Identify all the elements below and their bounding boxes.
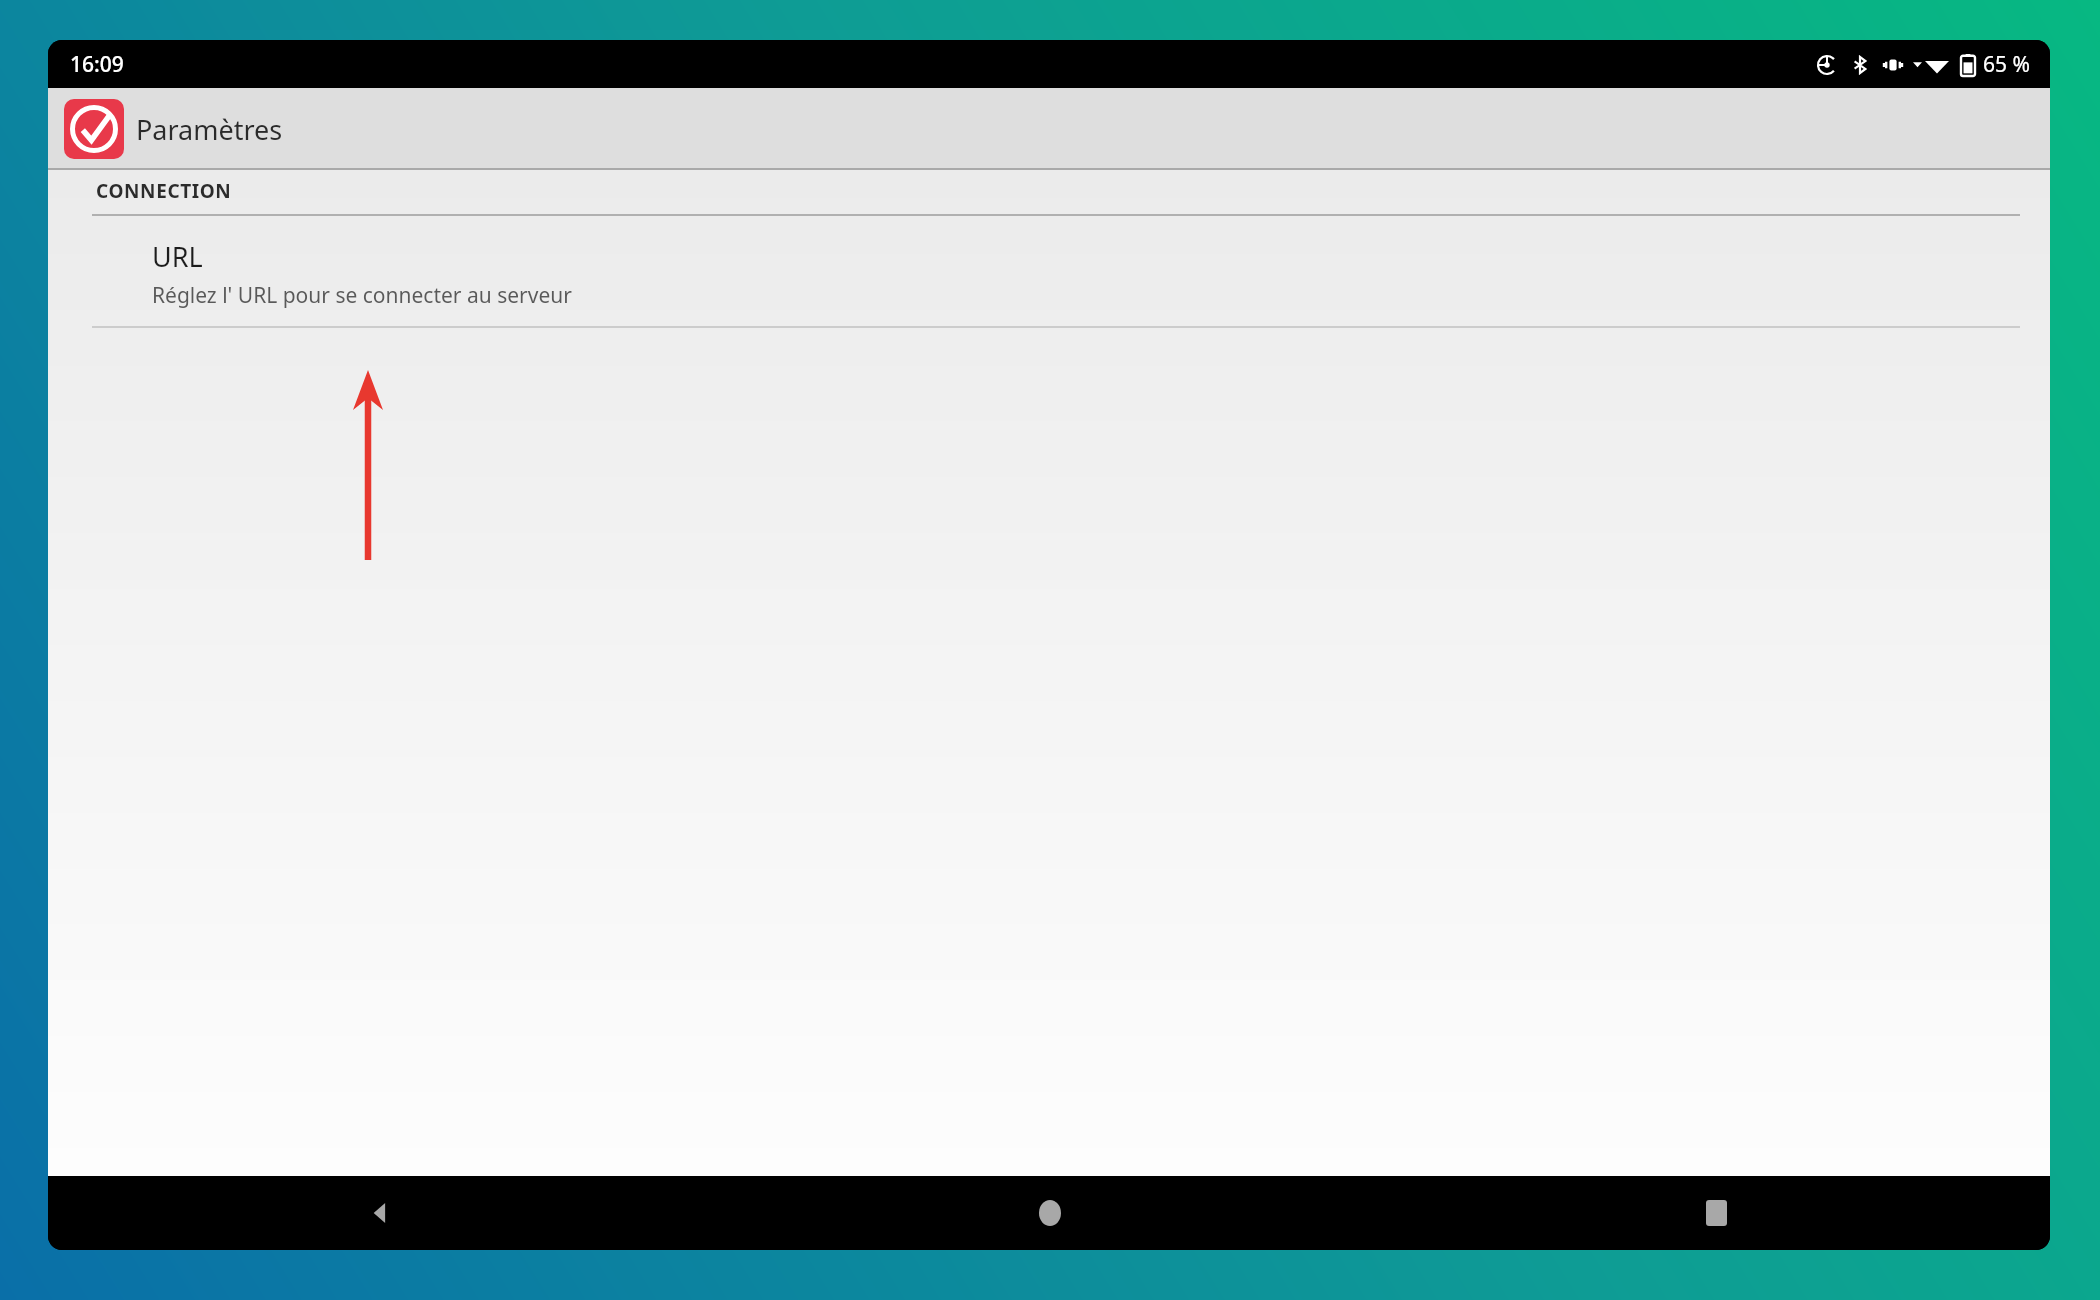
staticText: CONNECTION — [96, 178, 232, 204]
staticText: URL — [152, 238, 203, 275]
button[interactable]: Recent apps — [1383, 1176, 2050, 1250]
staticText: 16:09 — [70, 50, 124, 79]
staticText: Réglez l' URL pour se connecter au serve… — [152, 281, 572, 310]
button[interactable]: Home — [716, 1176, 1383, 1250]
button[interactable]: URL — [48, 216, 2050, 326]
button[interactable]: Back — [48, 1176, 716, 1250]
staticText: Paramètres — [136, 111, 283, 148]
button[interactable]: App icon — [64, 99, 124, 159]
staticText: 65 % — [1983, 50, 2030, 79]
